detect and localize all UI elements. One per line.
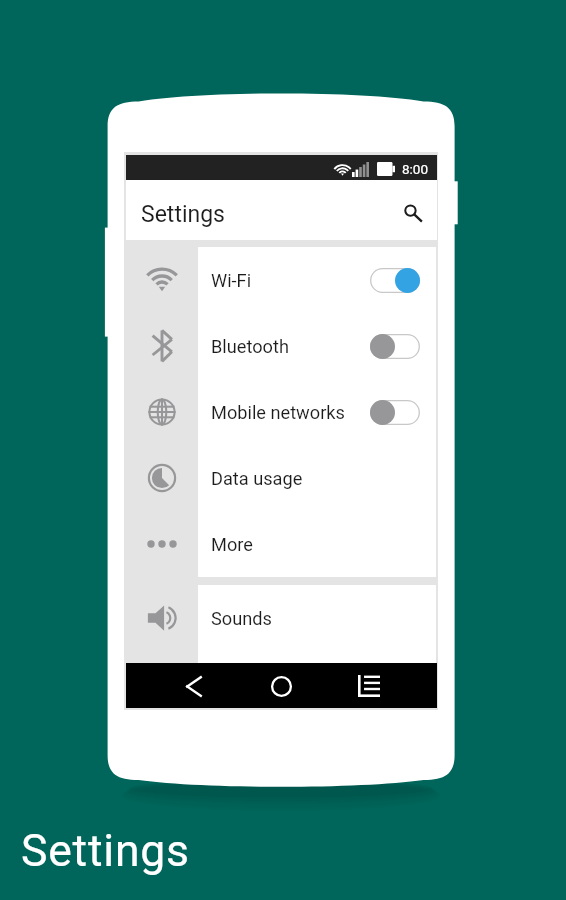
button[interactable]: Home [261,666,301,706]
staticText: More [211,534,253,555]
button[interactable]: Back [174,666,214,706]
staticText: 8:00 [402,161,429,177]
staticText: Settings [141,201,225,228]
button[interactable]: Mobile networks switch [370,400,420,425]
staticText: Bluetooth [211,336,289,357]
button[interactable]: Wi-Fi switch [370,268,420,293]
staticText: Settings [21,825,190,877]
button[interactable]: Bluetooth switch [370,334,420,359]
button[interactable]: Search [391,189,433,231]
button[interactable]: Recent apps [349,666,389,706]
staticText: Data usage [211,468,303,489]
button[interactable]: Wi-Fi [198,247,436,313]
button[interactable]: More [198,511,436,577]
button[interactable]: Data usage [198,445,436,511]
button[interactable]: Mobile networks [198,379,436,445]
button[interactable]: Bluetooth [198,313,436,379]
staticText: Wi-Fi [211,270,252,291]
button[interactable]: Sounds [198,585,436,651]
staticText: Mobile networks [211,402,345,423]
staticText: Sounds [211,608,272,629]
